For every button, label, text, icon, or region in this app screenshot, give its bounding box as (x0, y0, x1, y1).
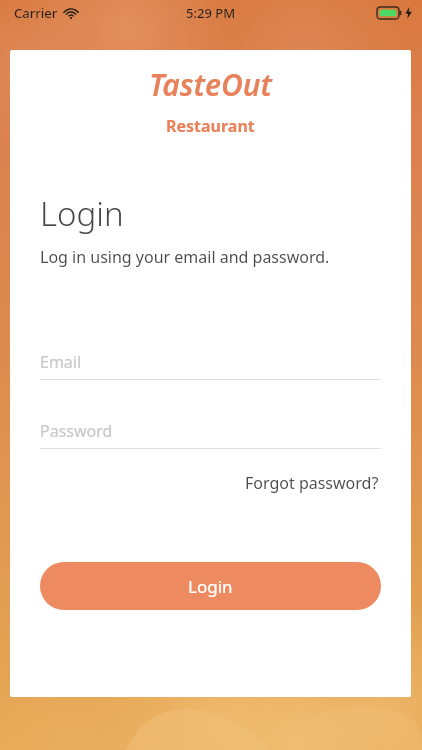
staticText: TasteOut (149, 64, 273, 105)
staticText: Login (188, 575, 233, 598)
staticText: Restaurant (166, 115, 255, 137)
button[interactable]: Login (40, 562, 381, 610)
staticText: Carrier (14, 4, 58, 22)
staticText: Email (40, 351, 82, 373)
button[interactable]: Forgot password? (243, 468, 381, 498)
button[interactable]: Email (40, 351, 381, 380)
staticText: Forgot password? (245, 472, 379, 494)
staticText: 5:29 PM (186, 4, 236, 22)
staticText: Password (40, 420, 113, 442)
staticText: Log in using your email and password. (40, 246, 330, 268)
staticText: Login (40, 191, 124, 236)
button[interactable]: Password (40, 420, 381, 449)
